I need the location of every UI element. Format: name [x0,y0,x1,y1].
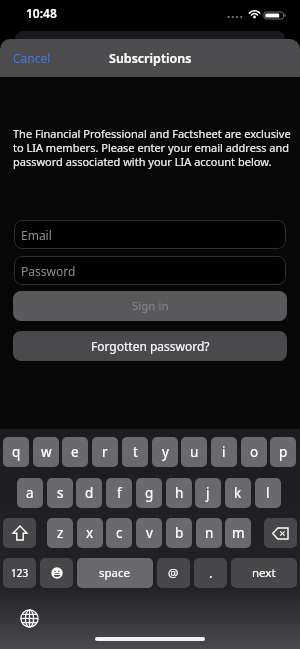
button[interactable]: d [76,478,102,508]
button[interactable] [40,558,73,588]
button[interactable]: . [194,558,227,588]
button[interactable]: Cancel [6,45,58,71]
button[interactable]: m [225,518,251,548]
staticText: Subscriptions [109,50,192,67]
button[interactable]: Password [14,256,286,285]
staticText: p [279,443,288,461]
button[interactable]: j [195,478,221,508]
button[interactable]: i [211,437,237,467]
button[interactable]: h [166,478,192,508]
button[interactable]: r [92,437,118,467]
staticText: j [206,484,210,502]
staticText: Sign in [132,298,169,314]
button[interactable]: Forgotten password? [13,331,287,361]
button[interactable]: t [122,437,148,467]
staticText: c [116,524,123,542]
staticText: space [99,565,131,581]
staticText: w [41,443,52,461]
button[interactable]: b [166,518,192,548]
button[interactable]: Email [14,220,286,249]
staticText: u [190,443,199,461]
button[interactable]: o [241,437,267,467]
button[interactable]: u [181,437,207,467]
staticText: next [252,565,276,581]
staticText: f [117,484,122,502]
staticText: t [133,443,138,461]
staticText: k [234,484,242,502]
button[interactable]: y [152,437,178,467]
staticText: a [26,484,34,502]
button[interactable] [16,605,43,632]
staticText: o [250,443,259,461]
button[interactable]: c [106,518,132,548]
button[interactable] [3,518,36,548]
staticText: @ [168,565,179,581]
staticText: z [57,524,64,542]
button[interactable]: z [47,518,73,548]
button[interactable]: a [17,478,43,508]
button[interactable]: k [225,478,251,508]
staticText: b [175,524,184,542]
staticText: s [57,484,64,502]
staticText: Forgotten password? [91,338,210,354]
staticText: e [71,443,79,461]
button[interactable]: n [196,518,222,548]
staticText: 123 [11,566,29,580]
button[interactable]: f [106,478,132,508]
staticText: Email [21,227,52,243]
button[interactable]: Sign in [13,291,287,321]
staticText: r [102,443,108,461]
staticText: . [209,564,213,582]
button[interactable]: q [3,437,29,467]
button[interactable]: next [231,558,297,588]
staticText: d [85,484,94,502]
button[interactable]: 123 [3,558,36,588]
button[interactable]: s [47,478,73,508]
button[interactable]: x [77,518,103,548]
staticText: n [205,524,214,542]
staticText: q [12,443,21,461]
staticText: g [145,484,154,502]
staticText: y [162,443,169,461]
staticText: 10:48 [26,5,57,21]
staticText: Password [21,263,76,279]
staticText: i [222,443,226,461]
button[interactable]: v [136,518,162,548]
staticText: m [232,524,245,542]
button[interactable]: e [62,437,88,467]
staticText: x [86,524,94,542]
staticText: h [175,484,184,502]
staticText: The Financial Professional and Factsheet… [13,126,295,174]
button[interactable] [264,518,297,548]
button[interactable]: space [77,558,153,588]
staticText: l [266,484,270,502]
button[interactable]: p [270,437,296,467]
staticText: v [146,524,153,542]
button[interactable]: w [33,437,59,467]
staticText: Cancel [13,50,51,66]
button[interactable]: g [136,478,162,508]
button[interactable]: l [255,478,281,508]
button[interactable]: @ [157,558,190,588]
